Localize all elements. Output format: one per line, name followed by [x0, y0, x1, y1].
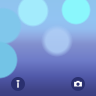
button[interactable]: Camera: [71, 77, 85, 91]
button[interactable]: Flashlight: [11, 77, 25, 91]
